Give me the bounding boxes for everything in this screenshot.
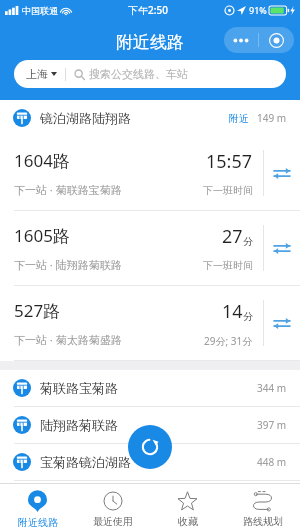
button[interactable]: 附近线路: [0, 484, 75, 532]
button[interactable]: 上海: [14, 60, 286, 88]
button[interactable]: 镜泊湖路陆翔路: [0, 100, 300, 136]
button[interactable]: 收藏: [150, 484, 225, 532]
staticText: 搜索公交线路、车站: [89, 67, 188, 81]
staticText: 收藏: [178, 515, 198, 528]
button[interactable]: More: [224, 27, 258, 53]
staticText: 527路: [14, 299, 61, 322]
staticText: 344 m: [257, 381, 287, 395]
staticText: 最近使用: [93, 515, 133, 528]
staticText: 宝菊路镜泊湖路: [40, 454, 131, 470]
staticText: 分: [243, 235, 253, 248]
staticText: 91%: [249, 4, 267, 16]
button[interactable]: 菊联路宝菊路: [0, 370, 300, 407]
staticText: 149 m: [257, 111, 287, 125]
button[interactable]: 宝菊路镜泊湖路: [0, 444, 300, 481]
staticText: 1605路: [14, 224, 70, 247]
staticText: 下午2:50: [128, 3, 168, 17]
button[interactable]: Refresh: [128, 425, 172, 469]
staticText: 下一班时间: [203, 259, 253, 272]
staticText: 镜泊湖路陆翔路: [40, 110, 131, 126]
staticText: 27: [222, 224, 243, 249]
staticText: 下一站 · 菊太路菊盛路: [14, 332, 122, 347]
staticText: 上海: [26, 67, 48, 81]
staticText: 397 m: [257, 418, 287, 432]
button[interactable]: 1605路: [0, 211, 300, 286]
button[interactable]: Switch direction: [264, 286, 300, 360]
button[interactable]: 路线规划: [225, 484, 300, 532]
staticText: 附近线路: [116, 32, 184, 53]
button[interactable]: 1604路: [0, 136, 300, 211]
button[interactable]: Switch direction: [264, 211, 300, 285]
staticText: 中国联通: [22, 5, 58, 16]
staticText: 路线规划: [243, 515, 283, 528]
button[interactable]: Switch direction: [264, 136, 300, 210]
button[interactable]: 陆翔路菊联路: [0, 407, 300, 444]
staticText: 448 m: [257, 455, 287, 469]
staticText: 分: [243, 310, 253, 323]
staticText: 15:57: [206, 149, 253, 174]
staticText: 29分; 31分: [204, 334, 253, 348]
staticText: 附近线路: [18, 516, 58, 529]
staticText: 14: [222, 299, 243, 324]
button[interactable]: 527路: [0, 286, 300, 361]
staticText: 菊联路宝菊路: [40, 380, 118, 396]
staticText: 附近: [229, 112, 249, 125]
button[interactable]: Locate: [259, 27, 294, 53]
staticText: 下一站 · 菊联路宝菊路: [14, 182, 122, 197]
staticText: 陆翔路菊联路: [40, 417, 118, 433]
staticText: 下一站 · 陆翔路菊联路: [14, 257, 122, 272]
button[interactable]: 最近使用: [75, 484, 150, 532]
staticText: 1604路: [14, 149, 70, 172]
staticText: 下一班时间: [203, 184, 253, 197]
